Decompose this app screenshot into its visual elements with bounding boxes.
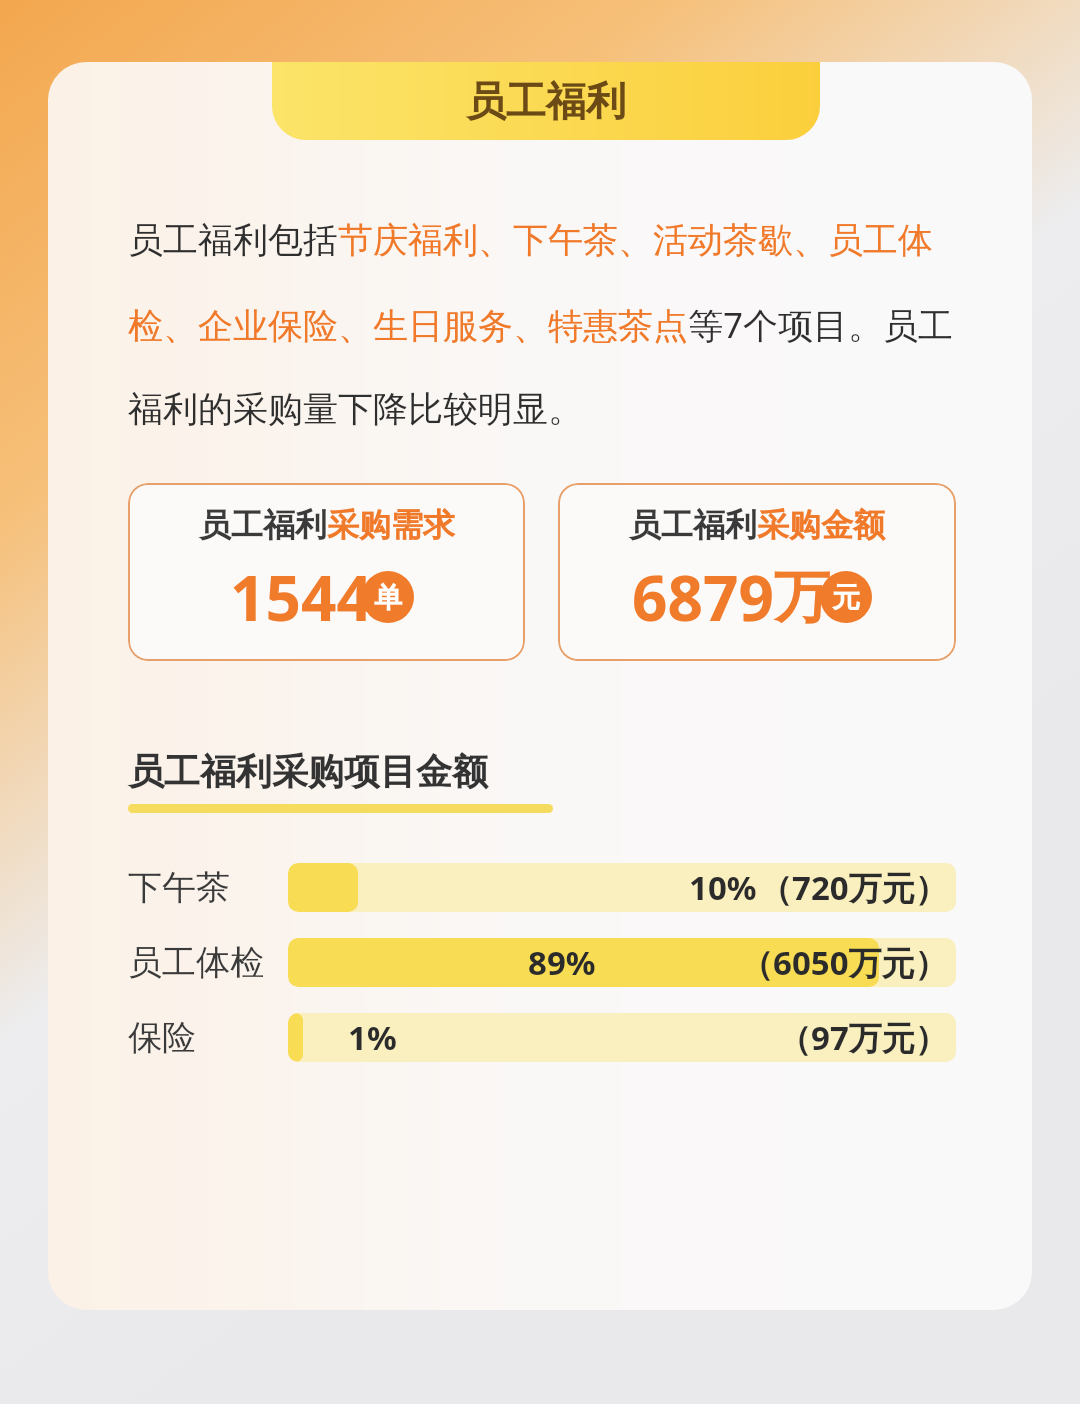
staticText: 员工体检 [128,941,264,984]
button[interactable]: 员工体检 [128,938,956,987]
staticText: 1544 [230,555,372,639]
staticText: 员工福利采购金额 [629,505,885,545]
staticText: 1% [348,1015,397,1060]
staticText: 员工福利包括节庆福利、下午茶、活动茶歇、员工体检、企业保险、生日服务、特惠茶点等… [128,218,956,431]
button[interactable]: 下午茶 [128,863,956,912]
staticText: 员工福利采购项目金额 [128,749,488,794]
staticText: 员工福利采购需求 [199,505,455,545]
staticText: （6050万元） [740,940,948,985]
staticText: 10% [689,865,757,910]
button[interactable]: 员工福利采购金额 [558,483,956,661]
staticText: 6879 [632,555,774,639]
staticText: 单 [374,580,402,615]
staticText: 元 [832,580,860,615]
button[interactable]: 员工福利 [272,62,820,140]
staticText: 89% [528,940,596,985]
button[interactable]: 保险 [128,1013,956,1062]
button[interactable]: 员工福利采购项目金额 [128,749,553,813]
staticText: 员工福利 [466,76,626,126]
staticText: （720万元） [759,865,948,910]
staticText: （97万元） [778,1015,948,1060]
button[interactable]: 员工福利采购需求 [128,483,525,661]
staticText: 下午茶 [128,866,230,909]
staticText: 万 [774,562,830,633]
staticText: 保险 [128,1016,196,1059]
